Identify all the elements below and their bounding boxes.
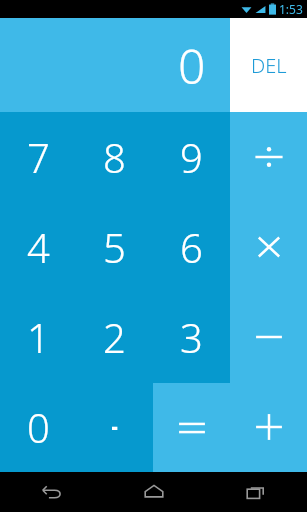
button[interactable]: 7 xyxy=(0,112,76,202)
staticText: 2 xyxy=(103,310,126,364)
button[interactable]: Add xyxy=(230,382,307,472)
button[interactable]: 0 xyxy=(0,382,76,472)
button[interactable]: Recent apps xyxy=(205,472,307,512)
staticText: 1 xyxy=(27,310,50,364)
staticText: 6 xyxy=(180,220,203,274)
button[interactable]: Back xyxy=(0,472,103,512)
staticText: 8 xyxy=(103,130,126,184)
staticText: 3 xyxy=(180,310,203,364)
button[interactable]: 9 xyxy=(153,112,230,202)
staticText: 0 xyxy=(178,33,206,98)
button[interactable]: 5 xyxy=(76,202,153,292)
button[interactable]: 8 xyxy=(76,112,153,202)
button[interactable]: Equals xyxy=(153,383,230,472)
staticText: 9 xyxy=(180,130,203,184)
button[interactable]: 6 xyxy=(153,202,230,292)
button[interactable]: DEL xyxy=(230,18,307,112)
button[interactable]: 4 xyxy=(0,202,76,292)
staticText: 1:53 xyxy=(279,1,303,17)
button[interactable]: 0 xyxy=(0,18,230,112)
button[interactable]: Multiply xyxy=(230,202,307,292)
staticText: 7 xyxy=(27,130,50,184)
staticText: 0 xyxy=(27,400,50,454)
button[interactable]: Home xyxy=(103,472,205,512)
staticText: DEL xyxy=(251,52,287,79)
staticText: 5 xyxy=(103,220,126,274)
staticText: 4 xyxy=(27,220,50,274)
button[interactable]: 2 xyxy=(76,292,153,382)
button[interactable]: Subtract xyxy=(230,292,307,382)
button[interactable]: 3 xyxy=(153,292,230,382)
button[interactable]: 1 xyxy=(0,292,76,382)
button[interactable] xyxy=(76,382,153,472)
button[interactable]: Divide xyxy=(230,112,307,202)
